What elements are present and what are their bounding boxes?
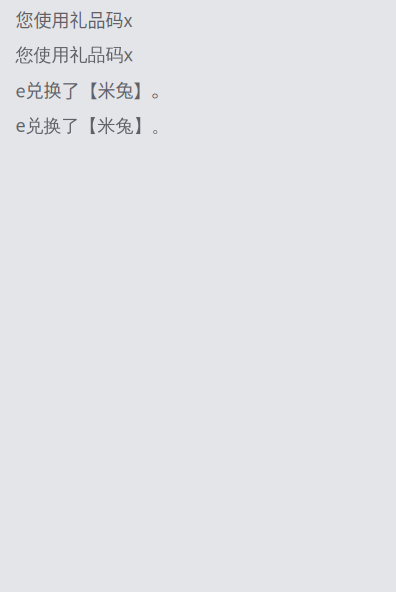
staticText: 您使用礼品码x [15, 6, 132, 32]
staticText: e兑换了【米兔】。 [15, 77, 169, 103]
staticText: 您使用礼品码x [15, 42, 133, 67]
staticText: e兑换了【米兔】。 [15, 113, 169, 137]
